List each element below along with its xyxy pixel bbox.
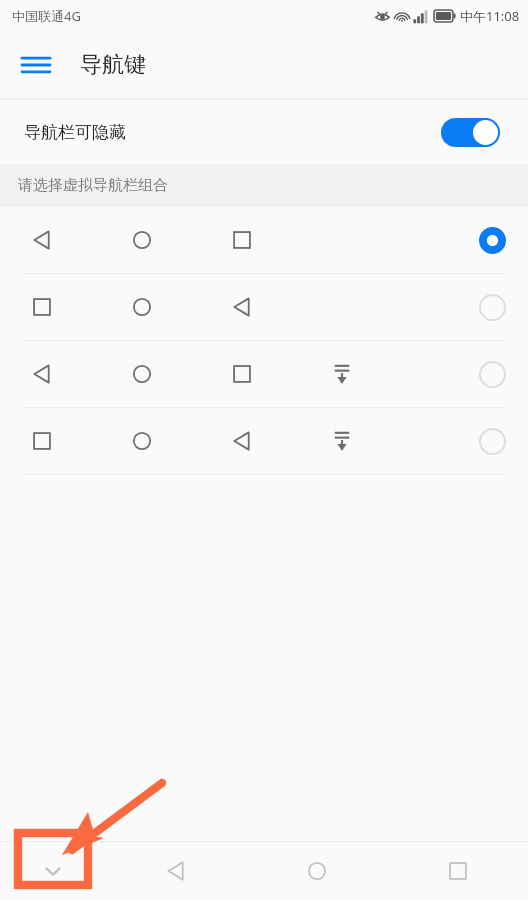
button[interactable]: Select bbox=[472, 354, 512, 394]
button[interactable]: Home bbox=[246, 842, 387, 900]
staticText: 中国联通4G bbox=[12, 7, 81, 25]
staticText: 请选择虚拟导航栏组合 bbox=[18, 176, 168, 195]
button[interactable]: Select bbox=[0, 408, 528, 474]
button[interactable]: Toggle navigation bar hide bbox=[441, 118, 500, 147]
button[interactable]: Select bbox=[472, 421, 512, 461]
button[interactable]: 导航栏可隐藏 bbox=[0, 100, 528, 164]
button[interactable]: Hide navigation bar bbox=[0, 842, 106, 900]
button[interactable]: Select bbox=[472, 287, 512, 327]
button[interactable]: Select bbox=[0, 274, 528, 340]
button[interactable]: Selected bbox=[0, 207, 528, 273]
staticText: 中午11:08 bbox=[460, 7, 520, 25]
button[interactable]: Menu bbox=[16, 45, 56, 85]
button[interactable]: Selected bbox=[472, 220, 512, 260]
button[interactable]: Back bbox=[106, 842, 246, 900]
staticText: 导航键 bbox=[80, 51, 146, 79]
button[interactable]: Select bbox=[0, 341, 528, 407]
staticText: 导航栏可隐藏 bbox=[24, 122, 126, 143]
button[interactable]: Recents bbox=[387, 842, 528, 900]
